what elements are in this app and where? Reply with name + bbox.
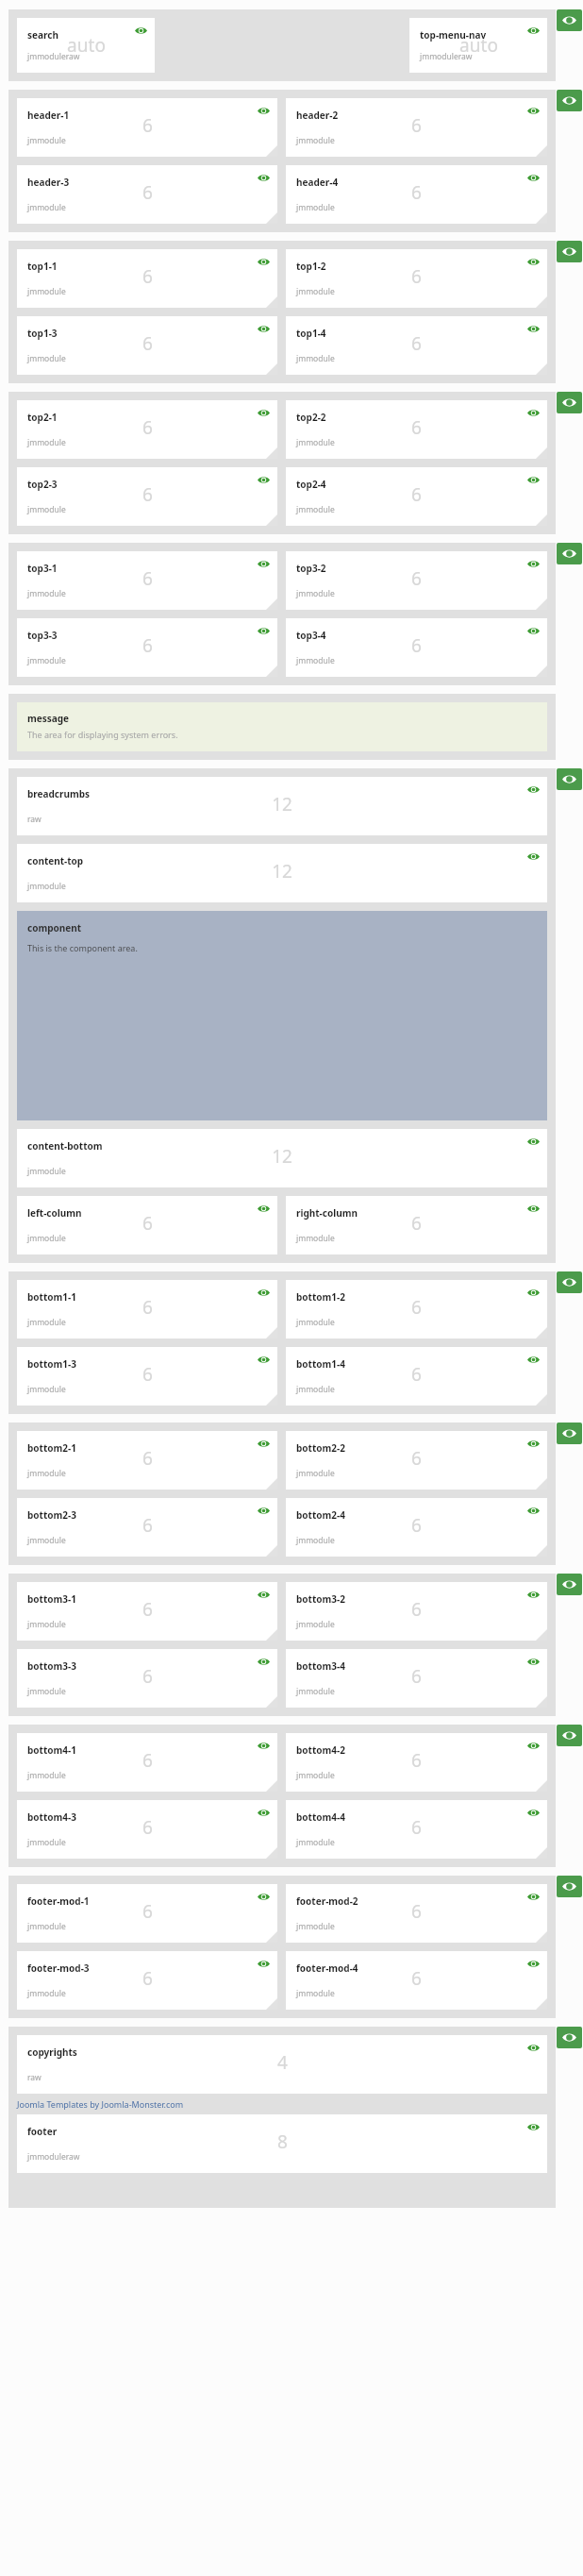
button[interactable]: 6 xyxy=(286,98,547,157)
button[interactable]: 6 xyxy=(17,618,277,677)
button[interactable]: Toggle module visibility xyxy=(258,1355,270,1364)
button[interactable]: Toggle visibility xyxy=(557,90,582,111)
button[interactable]: 6 xyxy=(286,467,547,526)
button[interactable]: Toggle module visibility xyxy=(258,1507,270,1515)
button[interactable]: Toggle visibility xyxy=(557,392,582,413)
button[interactable]: auto xyxy=(17,18,155,73)
button[interactable]: 6 xyxy=(17,551,277,610)
button[interactable]: Toggle visibility xyxy=(557,1876,582,1897)
button[interactable]: 6 xyxy=(286,1196,547,1254)
button[interactable]: Toggle module visibility xyxy=(258,1809,270,1817)
button[interactable]: Toggle module visibility xyxy=(258,107,270,115)
button[interactable]: Toggle module visibility xyxy=(258,1960,270,1968)
button[interactable]: Toggle module visibility xyxy=(527,1591,540,1599)
button[interactable]: Toggle module visibility xyxy=(527,258,540,266)
button[interactable]: auto xyxy=(409,18,547,73)
button[interactable]: Toggle module visibility xyxy=(258,258,270,266)
button[interactable]: 6 xyxy=(17,1951,277,2010)
button[interactable]: component xyxy=(17,911,547,1120)
button[interactable]: Toggle module visibility xyxy=(135,26,147,35)
button[interactable]: Toggle module visibility xyxy=(527,26,540,35)
button[interactable]: Toggle visibility xyxy=(557,9,582,31)
button[interactable]: 6 xyxy=(286,618,547,677)
button[interactable]: Toggle visibility xyxy=(557,1574,582,1595)
button[interactable]: Toggle module visibility xyxy=(258,174,270,182)
button[interactable]: Toggle module visibility xyxy=(527,1742,540,1750)
button[interactable]: Toggle module visibility xyxy=(527,476,540,484)
button[interactable]: Toggle module visibility xyxy=(258,1204,270,1213)
button[interactable]: 6 xyxy=(286,1884,547,1943)
button[interactable]: 6 xyxy=(17,165,277,224)
button[interactable]: 6 xyxy=(286,1347,547,1406)
button[interactable]: 6 xyxy=(286,400,547,459)
button[interactable]: 6 xyxy=(17,1733,277,1792)
button[interactable]: Toggle module visibility xyxy=(527,785,540,794)
button[interactable]: Toggle module visibility xyxy=(527,1893,540,1901)
button[interactable]: Toggle module visibility xyxy=(258,1591,270,1599)
button[interactable]: 8 xyxy=(17,2114,547,2173)
button[interactable]: 6 xyxy=(286,551,547,610)
button[interactable]: 6 xyxy=(286,1649,547,1708)
button[interactable]: Toggle module visibility xyxy=(258,409,270,417)
button[interactable]: Toggle module visibility xyxy=(527,560,540,568)
button[interactable]: Toggle module visibility xyxy=(527,1507,540,1515)
button[interactable]: message xyxy=(17,702,547,751)
button[interactable]: Toggle visibility xyxy=(557,2027,582,2048)
button[interactable]: Toggle module visibility xyxy=(527,1355,540,1364)
button[interactable]: Toggle visibility xyxy=(557,241,582,262)
button[interactable]: 12 xyxy=(17,1129,547,1187)
button[interactable]: 6 xyxy=(17,1196,277,1254)
button[interactable]: Toggle module visibility xyxy=(258,1658,270,1666)
button[interactable]: 6 xyxy=(17,1649,277,1708)
button[interactable]: Toggle visibility xyxy=(557,1725,582,1746)
button[interactable]: Toggle module visibility xyxy=(527,1288,540,1297)
button[interactable]: 6 xyxy=(17,1431,277,1490)
button[interactable]: Toggle visibility xyxy=(557,1423,582,1444)
button[interactable]: 4 xyxy=(17,2035,547,2094)
button[interactable]: 6 xyxy=(17,1280,277,1339)
button[interactable]: Toggle module visibility xyxy=(527,174,540,182)
button[interactable]: Toggle module visibility xyxy=(258,1893,270,1901)
button[interactable]: Toggle module visibility xyxy=(527,627,540,635)
button[interactable]: 6 xyxy=(286,165,547,224)
button[interactable]: 6 xyxy=(286,1498,547,1557)
button[interactable]: 6 xyxy=(286,1951,547,2010)
button[interactable]: 6 xyxy=(17,249,277,308)
button[interactable]: Toggle module visibility xyxy=(527,107,540,115)
button[interactable]: 6 xyxy=(17,316,277,375)
button[interactable]: Toggle visibility xyxy=(557,543,582,564)
button[interactable]: Toggle module visibility xyxy=(258,560,270,568)
button[interactable]: 6 xyxy=(17,400,277,459)
button[interactable]: Toggle module visibility xyxy=(527,409,540,417)
button[interactable]: Toggle module visibility xyxy=(258,325,270,333)
button[interactable]: Toggle module visibility xyxy=(527,1137,540,1146)
button[interactable]: 6 xyxy=(286,1431,547,1490)
button[interactable]: Toggle module visibility xyxy=(527,2123,540,2131)
button[interactable]: 6 xyxy=(286,249,547,308)
button[interactable]: Toggle module visibility xyxy=(527,1658,540,1666)
button[interactable]: Toggle module visibility xyxy=(258,1742,270,1750)
button[interactable]: 6 xyxy=(286,1800,547,1859)
button[interactable]: 6 xyxy=(17,467,277,526)
button[interactable]: Toggle module visibility xyxy=(527,852,540,861)
button[interactable]: Toggle module visibility xyxy=(258,1288,270,1297)
button[interactable]: Toggle visibility xyxy=(557,1271,582,1293)
button[interactable]: 6 xyxy=(17,1582,277,1641)
button[interactable]: 6 xyxy=(17,1884,277,1943)
button[interactable]: 6 xyxy=(286,316,547,375)
button[interactable]: Toggle visibility xyxy=(557,768,582,790)
button[interactable]: 12 xyxy=(17,777,547,835)
button[interactable]: Toggle module visibility xyxy=(258,627,270,635)
button[interactable]: 6 xyxy=(17,1498,277,1557)
button[interactable]: Toggle module visibility xyxy=(258,476,270,484)
button[interactable]: Toggle module visibility xyxy=(527,1204,540,1213)
button[interactable]: Toggle module visibility xyxy=(527,2044,540,2052)
button[interactable]: Toggle module visibility xyxy=(527,1809,540,1817)
button[interactable]: 6 xyxy=(17,98,277,157)
button[interactable]: Toggle module visibility xyxy=(258,1440,270,1448)
button[interactable]: 6 xyxy=(17,1800,277,1859)
button[interactable]: Toggle module visibility xyxy=(527,1960,540,1968)
button[interactable]: Toggle module visibility xyxy=(527,1440,540,1448)
button[interactable]: 12 xyxy=(17,844,547,902)
button[interactable]: 6 xyxy=(286,1280,547,1339)
